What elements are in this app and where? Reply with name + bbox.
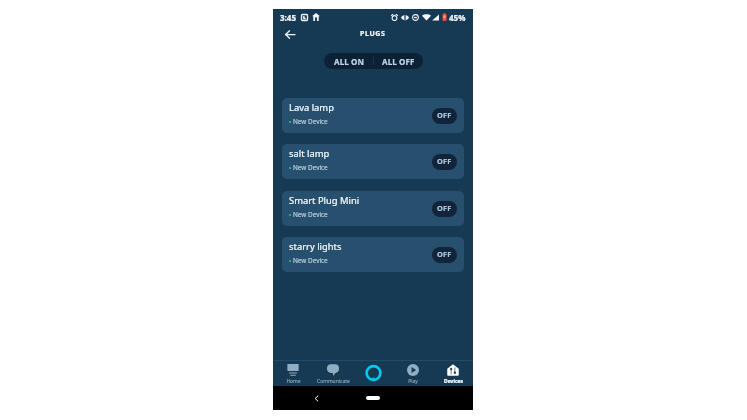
button[interactable]: OFF bbox=[432, 108, 457, 124]
staticText: Play bbox=[408, 378, 418, 385]
button[interactable]: Lava lamp bbox=[282, 98, 464, 133]
staticText: salt lamp bbox=[289, 147, 330, 160]
staticText: New Device bbox=[293, 256, 328, 265]
staticText: ALL ON bbox=[334, 56, 364, 67]
button[interactable]: Smart Plug Mini bbox=[282, 191, 464, 226]
staticText: OFF bbox=[437, 110, 452, 120]
button[interactable]: ALL OFF bbox=[374, 53, 423, 69]
staticText: New Device bbox=[293, 163, 328, 172]
button[interactable]: Communicate bbox=[313, 361, 353, 387]
staticText: New Device bbox=[293, 117, 328, 126]
staticText: New Device bbox=[293, 210, 328, 219]
staticText: 3:45 bbox=[280, 12, 296, 23]
staticText: Home bbox=[286, 378, 301, 385]
button[interactable]: OFF bbox=[432, 201, 457, 217]
button[interactable]: salt lamp bbox=[282, 144, 464, 179]
staticText: Communicate bbox=[317, 378, 350, 385]
button[interactable]: Alexa bbox=[353, 361, 393, 387]
staticText: PLUGS bbox=[360, 29, 386, 39]
staticText: OFF bbox=[437, 156, 452, 166]
button[interactable]: OFF bbox=[432, 247, 457, 263]
staticText: ALL OFF bbox=[382, 56, 415, 67]
button[interactable]: Devices bbox=[433, 361, 473, 387]
staticText: OFF bbox=[437, 203, 452, 213]
staticText: Lava lamp bbox=[289, 101, 334, 114]
button[interactable]: Back bbox=[282, 26, 298, 42]
button[interactable]: OFF bbox=[432, 154, 457, 170]
button[interactable]: Play bbox=[393, 361, 433, 387]
staticText: 45% bbox=[449, 12, 466, 23]
staticText: starry lights bbox=[289, 240, 342, 253]
button[interactable]: starry lights bbox=[282, 237, 464, 272]
button[interactable]: Home bbox=[273, 361, 313, 387]
button[interactable]: Home bbox=[366, 396, 380, 400]
staticText: Smart Plug Mini bbox=[289, 194, 360, 207]
button[interactable]: Back bbox=[311, 393, 322, 404]
button[interactable]: ALL ON bbox=[324, 53, 373, 69]
staticText: OFF bbox=[437, 249, 452, 259]
staticText: Devices bbox=[444, 378, 463, 385]
